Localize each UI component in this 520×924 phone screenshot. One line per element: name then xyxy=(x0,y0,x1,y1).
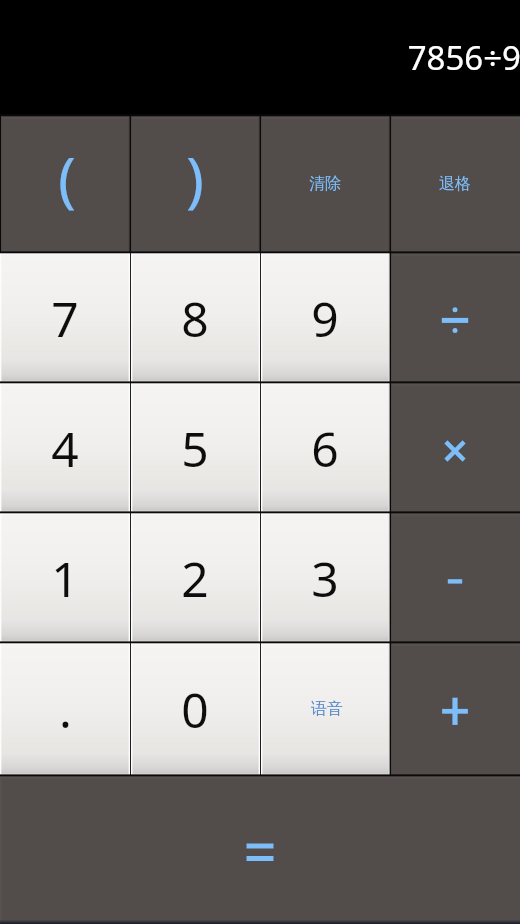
button[interactable]: 6 xyxy=(260,382,390,512)
staticText: 7 xyxy=(51,286,79,351)
staticText: ( xyxy=(58,137,76,219)
button[interactable]: . xyxy=(0,642,130,775)
button[interactable]: Left parenthesis xyxy=(0,115,130,252)
staticText: 退格 xyxy=(439,174,471,194)
staticText: 7856÷9 xyxy=(407,35,520,80)
button[interactable]: 5 xyxy=(130,382,260,512)
button[interactable]: Plus xyxy=(390,642,520,775)
staticText: 4 xyxy=(51,416,79,481)
staticText: 语音 xyxy=(311,699,343,719)
button[interactable]: 退格 xyxy=(390,115,520,252)
staticText: 0 xyxy=(181,677,209,742)
button[interactable]: 语音 xyxy=(260,642,390,775)
button[interactable]: 7 xyxy=(0,252,130,382)
button[interactable]: 3 xyxy=(260,512,390,642)
button[interactable]: 8 xyxy=(130,252,260,382)
button[interactable]: Multiply xyxy=(390,382,520,512)
staticText: 清除 xyxy=(309,174,341,194)
button[interactable]: Minus xyxy=(390,512,520,642)
button[interactable]: 2 xyxy=(130,512,260,642)
button[interactable]: 7856÷9 xyxy=(0,0,520,115)
staticText: ) xyxy=(186,137,204,219)
button[interactable]: 清除 xyxy=(260,115,390,252)
button[interactable]: 1 xyxy=(0,512,130,642)
staticText: 9 xyxy=(311,286,339,351)
button[interactable]: Equals xyxy=(0,775,520,924)
staticText: 5 xyxy=(181,416,209,481)
staticText: 6 xyxy=(311,416,339,481)
staticText: 2 xyxy=(181,546,209,611)
staticText: 8 xyxy=(181,286,209,351)
button[interactable]: 0 xyxy=(130,642,260,775)
staticText: 3 xyxy=(311,546,339,611)
staticText: . xyxy=(59,677,72,742)
button[interactable]: Divide xyxy=(390,252,520,382)
button[interactable]: Right parenthesis xyxy=(130,115,260,252)
staticText: 1 xyxy=(51,546,79,611)
button[interactable]: 9 xyxy=(260,252,390,382)
button[interactable]: 4 xyxy=(0,382,130,512)
